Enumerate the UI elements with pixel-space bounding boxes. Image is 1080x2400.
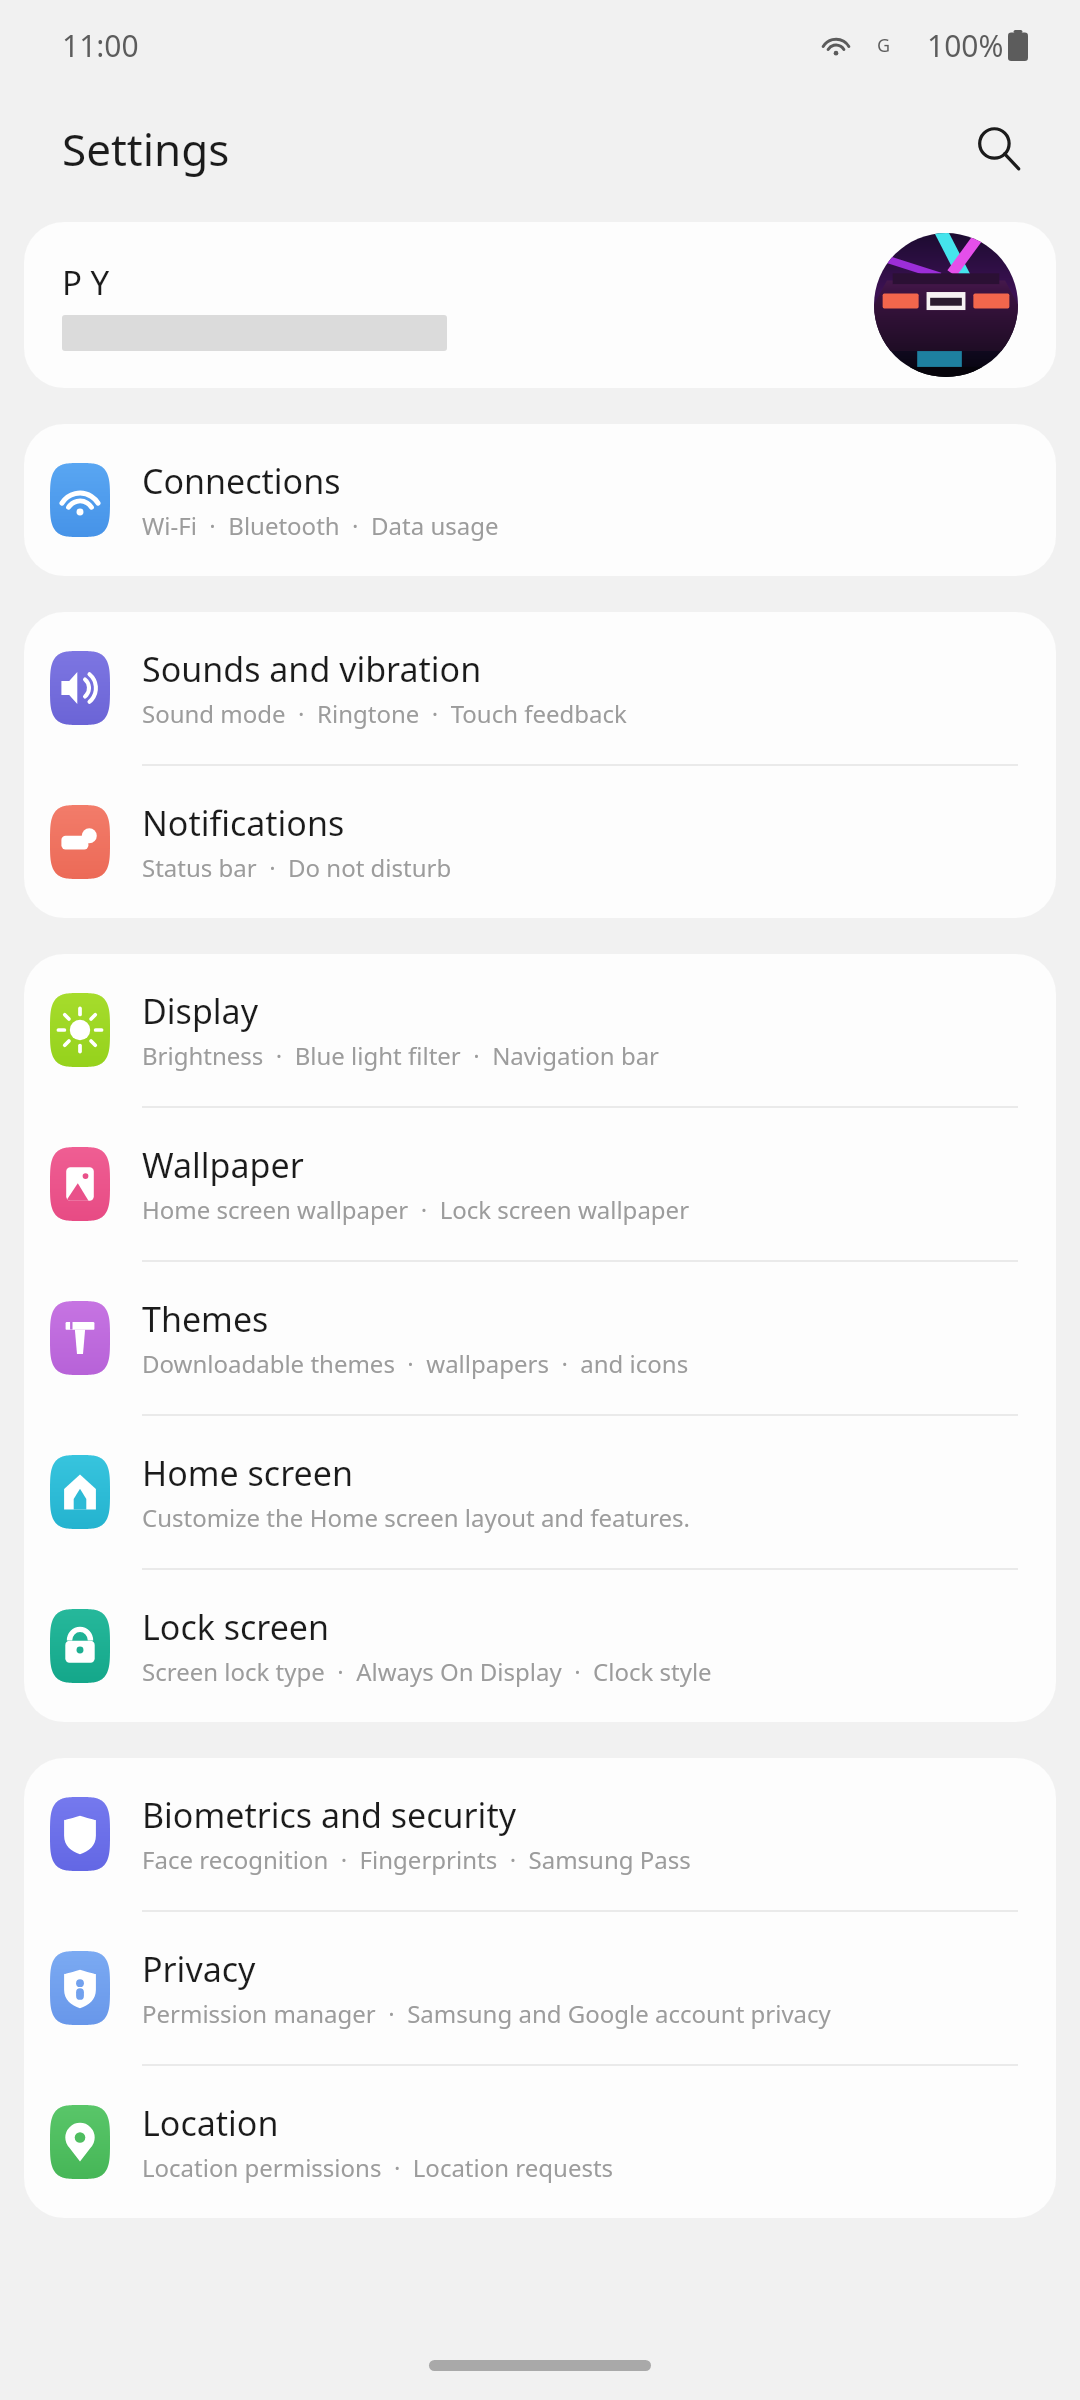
staticText: Downloadable themes · wallpapers · and i… [142,1347,689,1380]
button[interactable]: Home screen [24,1416,1056,1568]
staticText: Notifications [142,800,345,846]
staticText: Lock screen [142,1604,330,1650]
staticText: Privacy [142,1946,256,1992]
staticText: Biometrics and security [142,1792,516,1838]
staticText: Themes [142,1296,269,1342]
staticText: 11:00 [62,25,139,66]
staticText: 100% [927,25,1004,66]
staticText: Brightness · Blue light filter · Navigat… [142,1039,660,1072]
button[interactable]: P Y [24,222,1056,388]
staticText: Settings [62,119,230,179]
staticText: Display [142,988,258,1034]
staticText: Sound mode · Ringtone · Touch feedback [142,697,627,730]
staticText: Wallpaper [142,1142,304,1188]
button[interactable]: Biometrics and security [24,1758,1056,1910]
button[interactable]: Wallpaper [24,1108,1056,1260]
staticText: G [877,33,891,58]
staticText: Screen lock type · Always On Display · C… [142,1655,712,1688]
button[interactable]: Display [24,954,1056,1106]
staticText: Location permissions · Location requests [142,2151,614,2184]
staticText: Wi-Fi · Bluetooth · Data usage [142,509,499,542]
button[interactable]: Search [954,104,1044,194]
button[interactable]: Privacy [24,1912,1056,2064]
staticText: Location [142,2100,279,2146]
staticText: Home screen wallpaper · Lock screen wall… [142,1193,690,1226]
staticText: Face recognition · Fingerprints · Samsun… [142,1843,691,1876]
staticText: Sounds and vibration [142,646,482,692]
button[interactable]: Location [24,2066,1056,2218]
button[interactable]: Lock screen [24,1570,1056,1722]
button[interactable]: Connections [24,424,1056,576]
staticText: Permission manager · Samsung and Google … [142,1997,831,2030]
button[interactable]: Sounds and vibration [24,612,1056,764]
staticText: Home screen [142,1450,353,1496]
button[interactable]: Notifications [24,766,1056,918]
staticText: Customize the Home screen layout and fea… [142,1501,690,1534]
button[interactable]: Themes [24,1262,1056,1414]
staticText: P Y [62,260,110,305]
staticText: Status bar · Do not disturb [142,851,452,884]
staticText: Connections [142,458,341,504]
